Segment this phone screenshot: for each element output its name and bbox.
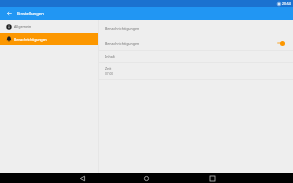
staticText: Benachrichtigungen	[105, 26, 140, 31]
button[interactable]: Recent apps	[202, 173, 222, 183]
staticText: Inhalt	[105, 54, 115, 59]
staticText: Benachrichtigungen	[14, 37, 47, 42]
button[interactable]: Home	[136, 173, 156, 183]
button[interactable]: Zeit	[99, 63, 293, 79]
staticText: Einstellungen	[17, 11, 44, 17]
staticText: Benachrichtigungen	[105, 41, 277, 46]
staticText: Zeit	[105, 66, 112, 71]
button[interactable]: Benachrichtigungen	[99, 36, 293, 50]
button[interactable]: Benachrichtigungen	[0, 33, 98, 45]
staticText: 20:54	[282, 1, 291, 6]
button[interactable]: Back	[2, 7, 16, 20]
button[interactable]: Allgemein	[0, 20, 98, 33]
staticText: Allgemein	[14, 24, 32, 29]
button[interactable]: Back	[72, 173, 92, 183]
staticText: 07:00	[105, 72, 114, 76]
